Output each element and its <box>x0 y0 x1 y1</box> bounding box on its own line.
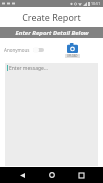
staticText: Enter message... <box>9 65 48 72</box>
staticText: Create Report <box>22 11 81 23</box>
button[interactable]: Upload photo <box>65 42 80 58</box>
button[interactable]: Home <box>44 167 60 183</box>
staticText: UPLOAD <box>67 54 78 58</box>
staticText: Enter Report Detail Below <box>15 29 89 37</box>
button[interactable]: Anonymous <box>4 47 44 53</box>
staticText: Anonymous <box>4 47 30 53</box>
button[interactable]: Enter message... <box>5 63 98 166</box>
button[interactable]: Back <box>14 167 30 183</box>
button[interactable]: Anonymous toggle <box>33 47 44 53</box>
staticText: 10:51 <box>91 1 101 6</box>
button[interactable]: Recent apps <box>73 167 89 183</box>
